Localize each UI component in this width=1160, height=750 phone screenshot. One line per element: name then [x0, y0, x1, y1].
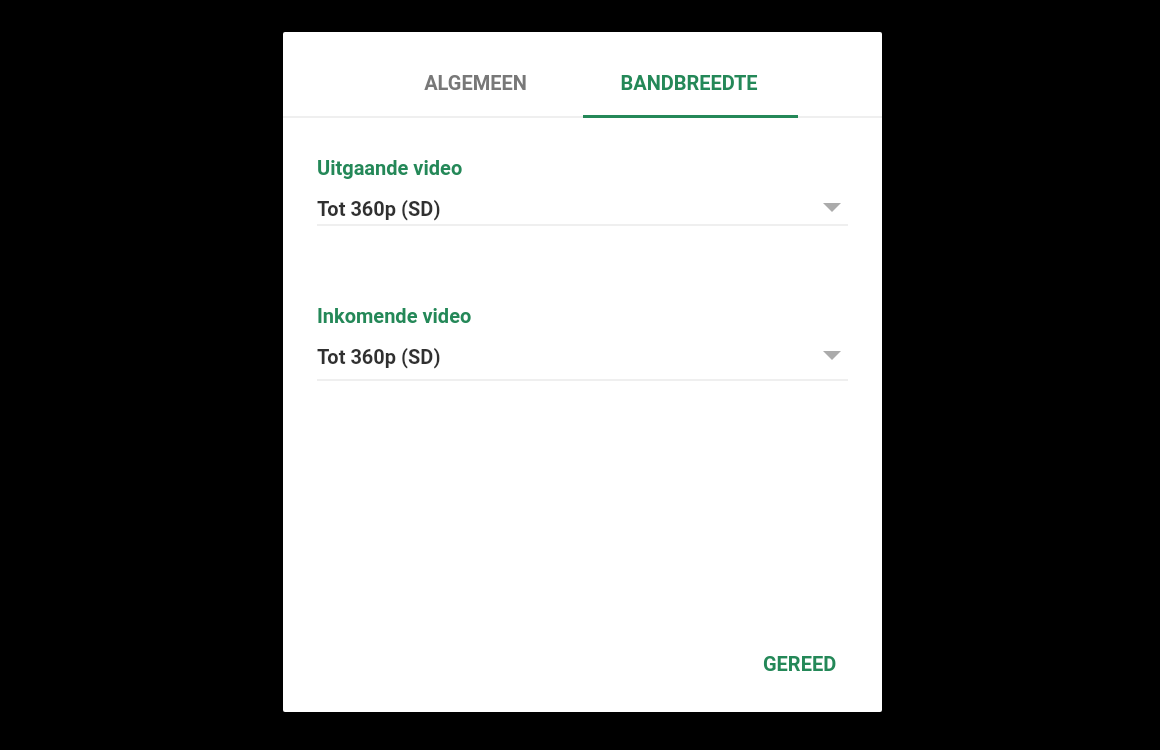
staticText: Inkomende video — [317, 304, 472, 327]
staticText: Tot 360p (SD) — [317, 197, 441, 220]
button[interactable]: ALGEMEEN — [368, 32, 582, 118]
staticText: ALGEMEEN — [424, 71, 527, 94]
button[interactable]: BANDBREEDTE — [582, 32, 796, 118]
staticText: Uitgaande video — [317, 156, 463, 179]
button[interactable]: Inkomende video: Tot 360p (SD) — [317, 341, 848, 381]
staticText: GEREED — [763, 652, 837, 675]
button[interactable]: GEREED — [743, 637, 857, 690]
staticText: Tot 360p (SD) — [317, 345, 441, 368]
staticText: BANDBREEDTE — [620, 71, 758, 94]
button[interactable]: Uitgaande video: Tot 360p (SD) — [317, 193, 848, 226]
